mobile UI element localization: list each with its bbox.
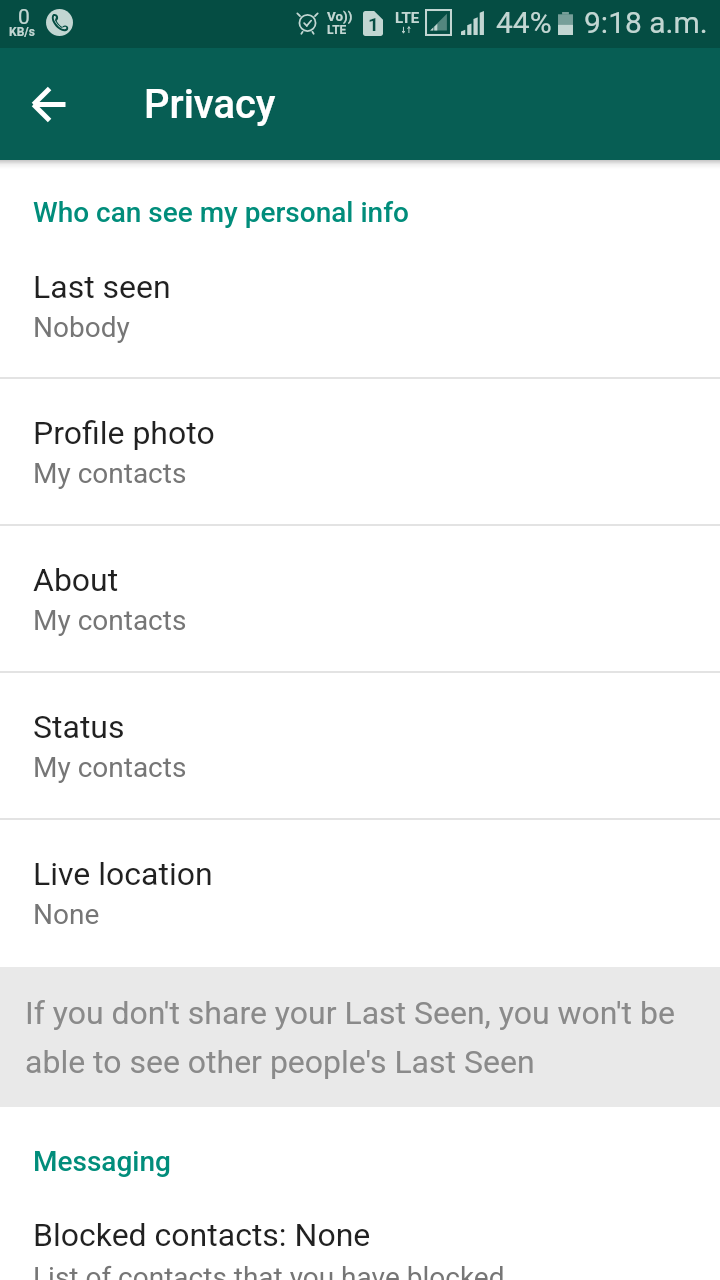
staticText: 9:18 a.m. (584, 5, 708, 40)
button[interactable]: Blocked contacts: None (0, 1181, 720, 1280)
staticText: Nobody (33, 311, 130, 344)
staticText: Blocked contacts: None (33, 1216, 371, 1254)
staticText: Privacy (144, 81, 276, 128)
staticText: Vo)) (327, 9, 353, 25)
staticText: LTE (395, 9, 420, 27)
staticText: 1 (368, 13, 379, 35)
staticText: KB/s (9, 25, 35, 39)
staticText: Last seen (33, 268, 171, 306)
button[interactable]: Status (0, 672, 720, 819)
button[interactable]: Live location (0, 819, 720, 966)
staticText: Status (33, 708, 125, 746)
button[interactable]: About (0, 525, 720, 672)
staticText: Who can see my personal info (33, 196, 409, 229)
staticText: Live location (33, 855, 213, 893)
staticText: able to see other people's Last Seen (25, 1043, 535, 1081)
staticText: 0 (18, 5, 30, 30)
staticText: My contacts (33, 751, 187, 784)
staticText: Profile photo (33, 414, 215, 452)
staticText: My contacts (33, 457, 187, 490)
staticText: List of contacts that you have blocked (33, 1261, 505, 1280)
staticText: My contacts (33, 604, 187, 637)
staticText: Messaging (33, 1145, 171, 1178)
staticText: If you don't share your Last Seen, you w… (25, 994, 675, 1032)
staticText: About (33, 561, 119, 599)
button[interactable]: Back (12, 68, 84, 140)
staticText: LTE (327, 23, 347, 37)
staticText: 44% (496, 5, 552, 40)
button[interactable]: Last seen (0, 232, 720, 378)
staticText: None (33, 898, 100, 931)
button[interactable]: Profile photo (0, 378, 720, 525)
